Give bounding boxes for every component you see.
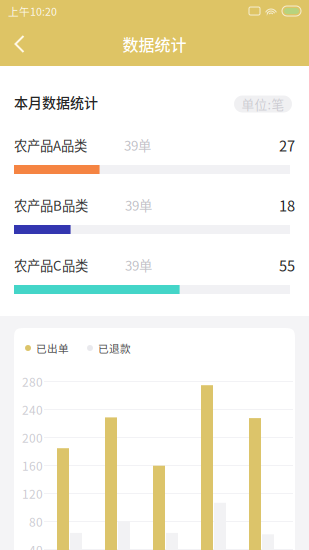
staticText: 本月数据统计: [14, 92, 98, 112]
staticText: 40: [29, 541, 43, 550]
staticText: 农产品B品类: [14, 195, 88, 215]
staticText: 39单: [125, 195, 152, 215]
staticText: 80: [29, 513, 43, 530]
staticText: 39单: [125, 255, 152, 275]
button[interactable]: 返回: [0, 22, 46, 66]
staticText: 上午10:20: [8, 3, 57, 19]
staticText: 数据统计: [122, 32, 186, 56]
staticText: 单位:笔: [241, 95, 284, 113]
staticText: 160: [22, 457, 43, 474]
staticText: 120: [22, 485, 43, 502]
staticText: 27: [279, 134, 295, 156]
staticText: 55: [279, 254, 295, 276]
staticText: 已出单: [36, 340, 69, 356]
staticText: 已退款: [98, 340, 131, 356]
staticText: 280: [22, 373, 43, 390]
staticText: 18: [279, 194, 295, 216]
staticText: 农产品A品类: [14, 135, 87, 155]
staticText: 200: [22, 429, 43, 446]
staticText: 农产品C品类: [14, 255, 88, 275]
staticText: 39单: [124, 135, 151, 155]
staticText: 240: [22, 401, 43, 418]
